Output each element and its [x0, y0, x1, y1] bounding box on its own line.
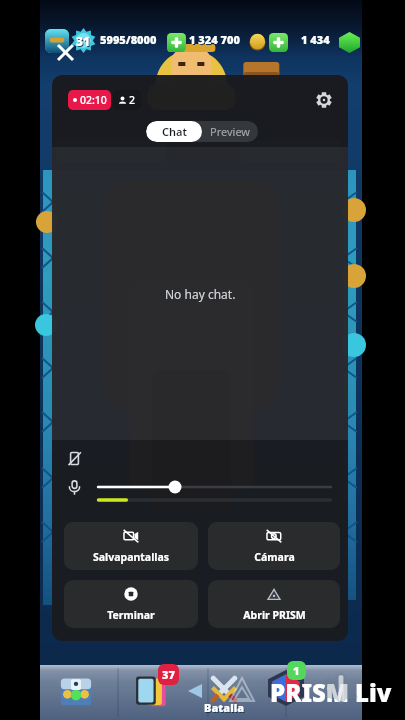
staticText: Preview — [210, 124, 251, 139]
button[interactable]: 2 — [113, 90, 141, 110]
button[interactable]: Cámara — [208, 522, 340, 570]
staticText: 2 — [129, 93, 136, 107]
button[interactable]: Chests — [58, 672, 94, 708]
staticText: Batalla — [205, 701, 246, 716]
staticText: Cámara — [254, 550, 295, 564]
button[interactable]: Battle — [203, 668, 245, 710]
staticText: Salvapantallas — [93, 550, 169, 564]
button[interactable]: 02:10 — [68, 90, 111, 110]
button[interactable]: Buy gold — [167, 33, 186, 52]
staticText: 02:10 — [80, 93, 107, 107]
staticText: Liv — [355, 676, 392, 709]
staticText: 5995/8000 — [100, 32, 157, 47]
button[interactable]: Abrir PRISM — [208, 580, 340, 628]
staticText: Abrir PRISM — [243, 608, 306, 622]
button[interactable]: Preview — [202, 121, 258, 142]
staticText: No hay chat. — [165, 286, 236, 302]
button[interactable]: Settings — [311, 87, 337, 113]
button[interactable]: Clan — [268, 670, 304, 706]
staticText: 1 434 — [301, 32, 330, 47]
button[interactable]: Cards — [133, 672, 171, 710]
button[interactable]: Volume — [97, 479, 332, 495]
button[interactable]: Buy gems — [269, 33, 288, 52]
staticText: 1 324 700 — [190, 33, 241, 48]
button[interactable]: Screen off — [62, 446, 86, 470]
button[interactable]: Close — [53, 40, 77, 64]
button[interactable]: Salvapantallas — [64, 522, 198, 570]
button[interactable]: Chat — [146, 121, 202, 142]
button[interactable]: Terminar — [64, 580, 198, 628]
staticText: Terminar — [107, 608, 155, 622]
staticText: 31 — [76, 33, 91, 49]
staticText: 31 — [77, 34, 92, 50]
staticText: 1 324 700 — [189, 32, 240, 47]
staticText: Chat — [162, 124, 187, 139]
button[interactable]: Profile — [45, 29, 69, 53]
staticText: 37 — [162, 667, 175, 682]
staticText: Batalla — [204, 700, 245, 715]
staticText: 5995/8000 — [101, 33, 158, 48]
button[interactable]: Microphone — [62, 475, 86, 499]
staticText: PRISM — [270, 676, 350, 709]
staticText: 1 434 — [302, 33, 331, 48]
staticText: 1 — [293, 663, 300, 678]
